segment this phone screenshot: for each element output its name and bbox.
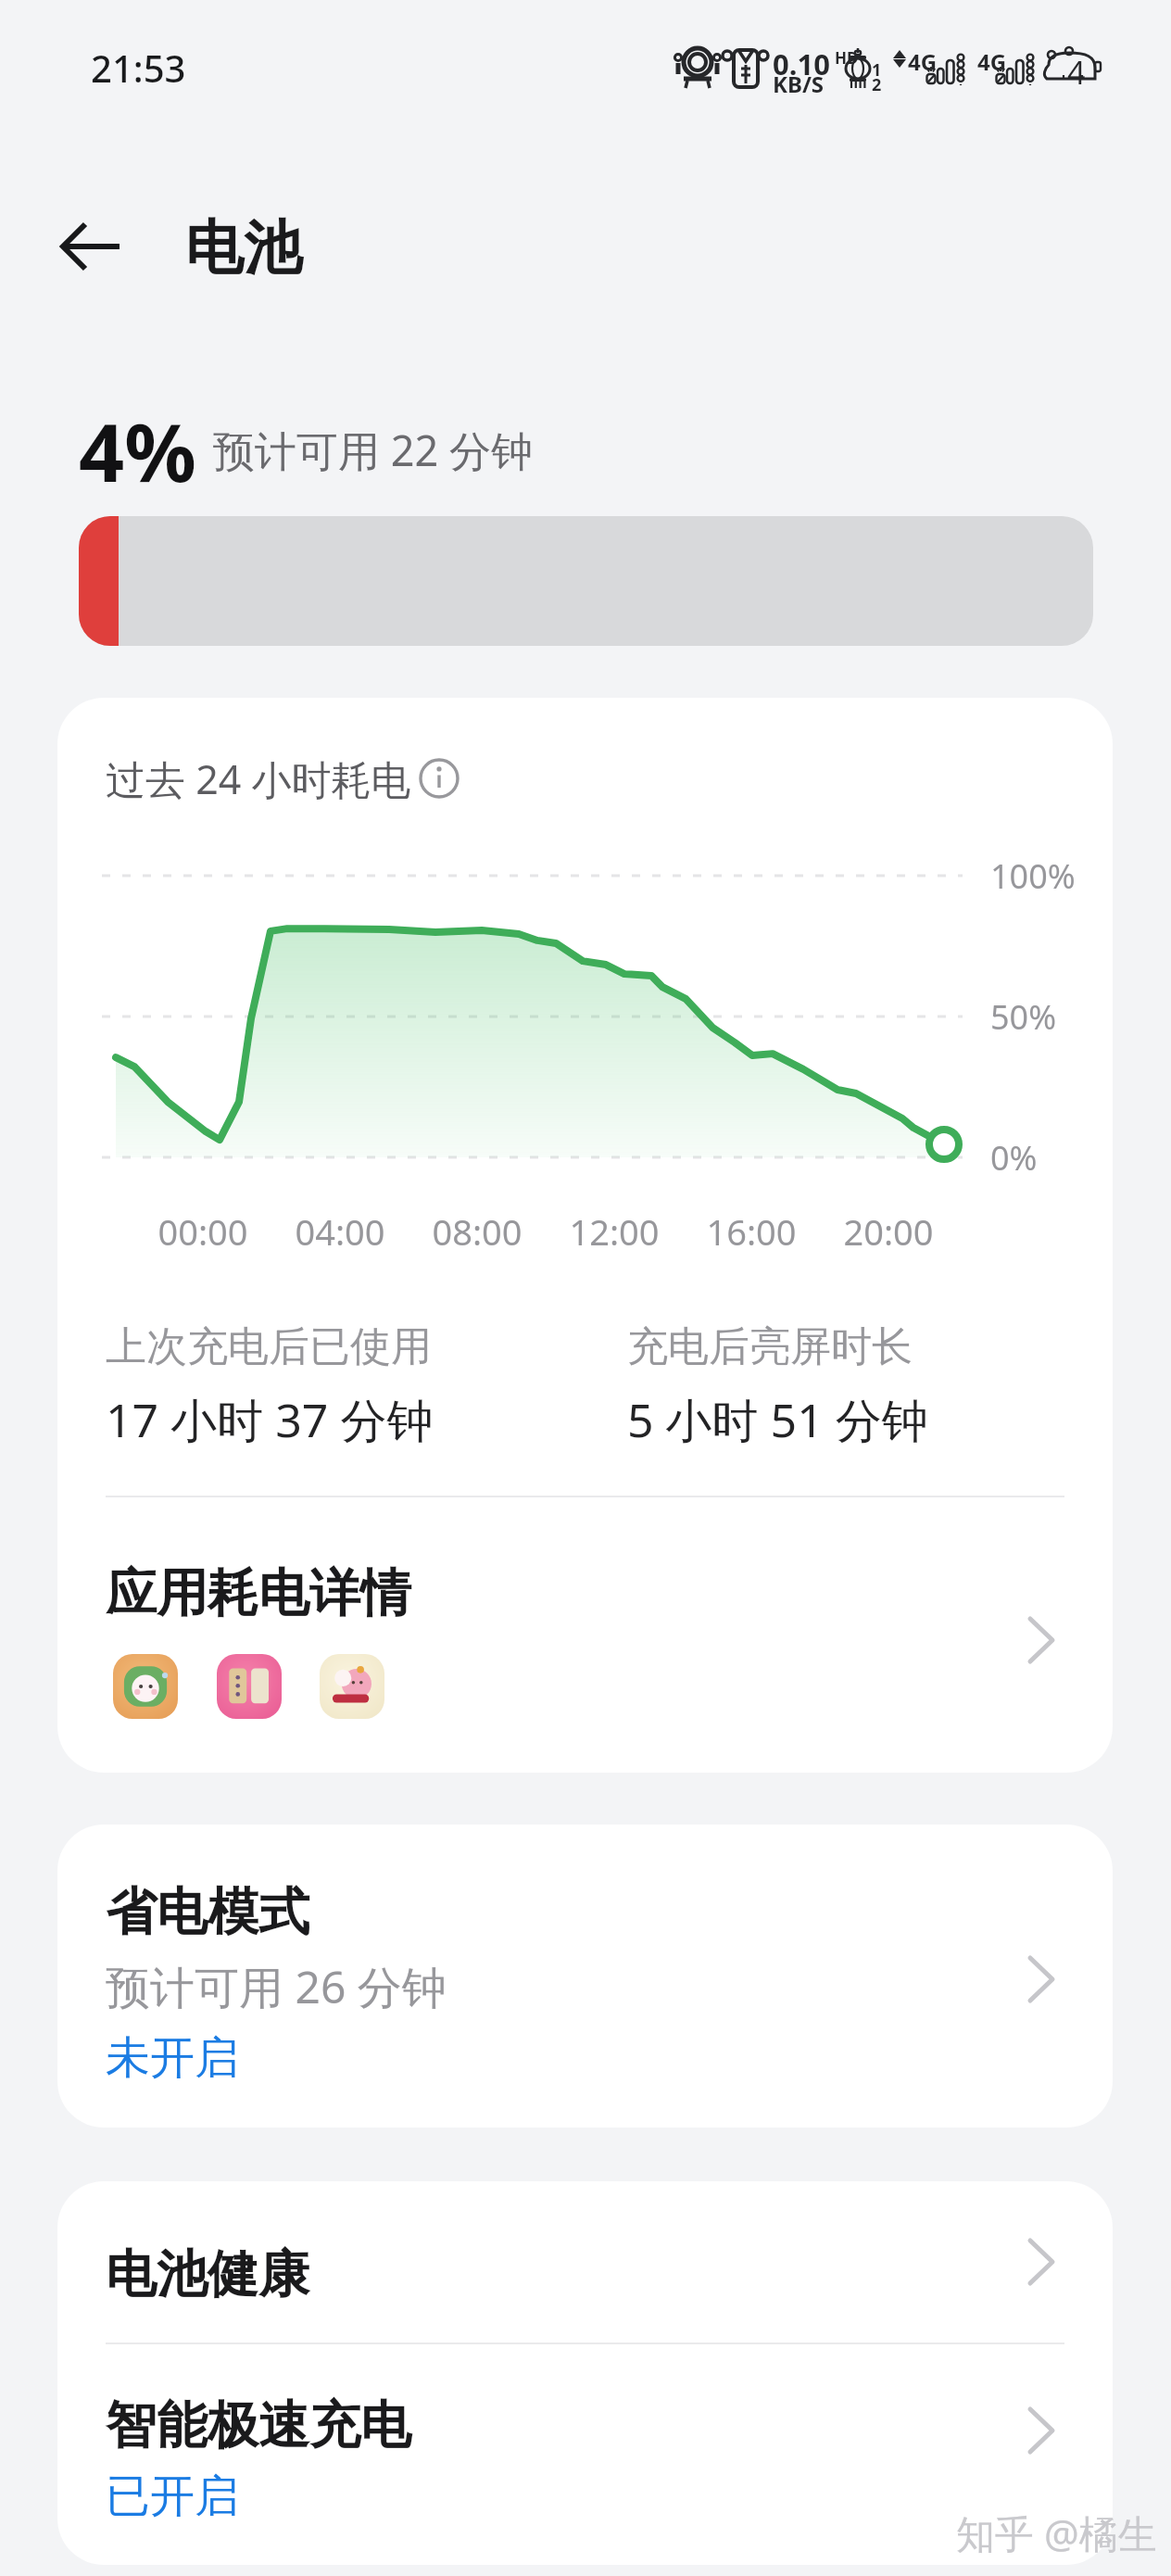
- button[interactable]: 电池健康: [57, 2181, 1113, 2342]
- staticText: 08:00: [403, 1207, 551, 1256]
- staticText: 应用耗电详情: [106, 1561, 411, 1625]
- staticText: 20:00: [814, 1207, 963, 1256]
- staticText: 预计可用 26 分钟: [106, 1956, 447, 2017]
- staticText: 2: [872, 73, 882, 96]
- staticText: 0%: [990, 1135, 1038, 1181]
- button[interactable]: Back: [35, 191, 146, 302]
- staticText: 0.10: [773, 44, 830, 83]
- button[interactable]: Info: [419, 758, 460, 799]
- staticText: 省电模式: [106, 1880, 309, 1944]
- staticText: 过去 24 小时耗电: [106, 751, 411, 806]
- staticText: 21:53: [91, 43, 186, 93]
- staticText: 电池健康: [106, 2242, 309, 2306]
- staticText: 已开启: [106, 2469, 239, 2524]
- staticText: 04:00: [266, 1207, 414, 1256]
- staticText: 上次充电后已使用: [106, 1321, 432, 1372]
- staticText: KB/S: [773, 69, 825, 99]
- staticText: 4G: [908, 46, 938, 77]
- staticText: 12:00: [540, 1207, 688, 1256]
- staticText: 智能极速充电: [106, 2393, 411, 2457]
- button[interactable]: 省电模式: [57, 1825, 1113, 2128]
- staticText: 16:00: [677, 1207, 825, 1256]
- staticText: 1: [872, 58, 882, 82]
- staticText: 未开启: [106, 2030, 239, 2086]
- staticText: 100%: [990, 853, 1076, 899]
- staticText: 知乎 @橘生: [956, 2507, 1157, 2559]
- staticText: 电池: [185, 211, 302, 284]
- staticText: 4%: [79, 397, 196, 505]
- staticText: 50%: [990, 994, 1057, 1040]
- staticText: 4G: [977, 46, 1007, 77]
- staticText: 5 小时 51 分钟: [627, 1388, 928, 1451]
- staticText: 00:00: [129, 1207, 277, 1256]
- button[interactable]: 应用耗电详情: [57, 1497, 1113, 1773]
- staticText: 17 小时 37 分钟: [106, 1388, 434, 1451]
- staticText: HD: [835, 47, 859, 69]
- staticText: 4: [1067, 51, 1086, 94]
- button[interactable]: 智能极速充电: [57, 2344, 1113, 2565]
- staticText: 充电后亮屏时长: [627, 1321, 913, 1372]
- staticText: 预计可用 22 分钟: [213, 422, 533, 478]
